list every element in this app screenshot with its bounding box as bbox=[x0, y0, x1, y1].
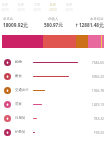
staticText: 日用品 bbox=[15, 116, 26, 120]
button[interactable]: 5月 bbox=[0, 0, 13, 12]
staticText: 6月 bbox=[18, 2, 25, 7]
staticText: 5956.23 bbox=[90, 74, 104, 78]
staticText: 本月结余 bbox=[90, 17, 104, 21]
staticText: 2023 bbox=[1, 7, 9, 11]
staticText: 8月 bbox=[50, 2, 57, 7]
staticText: 2023 bbox=[17, 7, 25, 11]
button[interactable]: 9月 bbox=[61, 0, 77, 12]
staticText: 2023 bbox=[65, 7, 73, 11]
staticText: 护肤品 bbox=[15, 130, 26, 134]
staticText: 7月 bbox=[34, 2, 41, 7]
staticText: 783.32 bbox=[90, 116, 104, 120]
button[interactable]: 6月 bbox=[13, 0, 29, 12]
staticText: 居家 bbox=[15, 102, 22, 106]
button[interactable]: 日用品 bbox=[4, 111, 104, 125]
staticText: 1956.78 bbox=[90, 88, 104, 92]
button[interactable]: 居家 bbox=[4, 97, 104, 111]
button[interactable]: 7月 bbox=[29, 0, 45, 12]
staticText: 580.97元 bbox=[44, 22, 63, 28]
staticText: 2023 bbox=[49, 7, 57, 11]
staticText: 5月 bbox=[2, 2, 9, 7]
staticText: 2023 bbox=[33, 7, 41, 11]
button[interactable]: 8月 bbox=[45, 0, 61, 12]
staticText: 18009.92元 bbox=[3, 22, 28, 28]
staticText: 餐饮 bbox=[15, 74, 22, 78]
staticText: 购物 bbox=[15, 60, 22, 64]
button[interactable]: 购物 bbox=[4, 55, 104, 69]
staticText: 9月 bbox=[66, 2, 73, 7]
staticText: 1429.13 bbox=[90, 102, 104, 106]
button[interactable]: 护肤品 bbox=[4, 125, 104, 139]
button[interactable]: 餐饮 bbox=[4, 69, 104, 83]
staticText: 总收入 bbox=[48, 17, 59, 21]
button[interactable]: 交通出行 bbox=[4, 83, 104, 97]
staticText: 7546.65 bbox=[90, 60, 104, 64]
staticText: 199.23 bbox=[90, 130, 104, 134]
staticText: ↑12881.48元 bbox=[75, 22, 104, 28]
staticText: 交通出行 bbox=[15, 88, 29, 92]
staticText: 总支出 bbox=[3, 17, 14, 21]
